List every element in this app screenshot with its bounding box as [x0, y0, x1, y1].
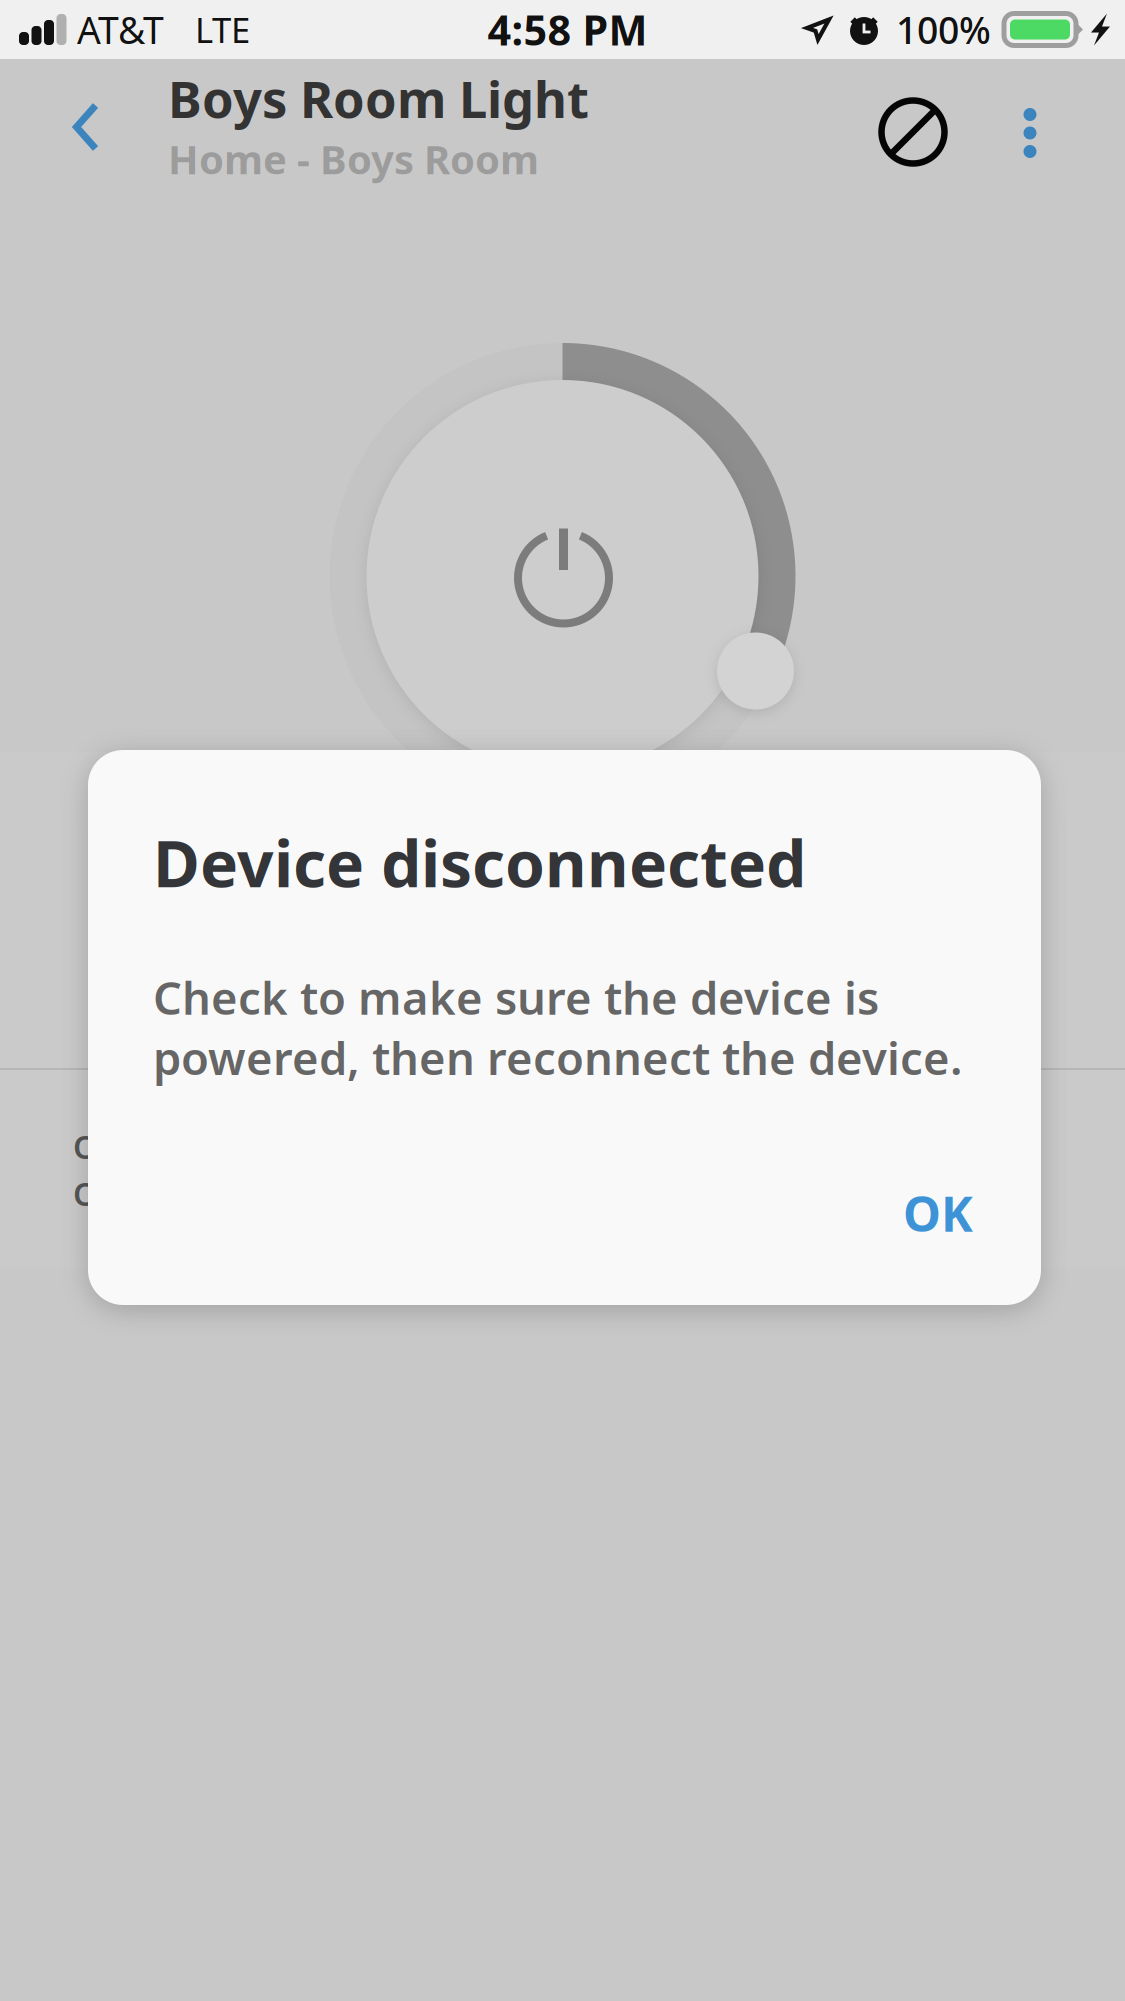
- staticText: Off: [73, 1172, 122, 1215]
- staticText: LTE: [195, 6, 250, 52]
- button[interactable]: Off: [0, 1170, 1125, 1217]
- staticText: Off: [73, 1125, 122, 1168]
- staticText: 100%: [896, 5, 991, 54]
- staticText: Device disconnected: [153, 820, 806, 905]
- staticText: Home - Boys Room: [168, 132, 539, 185]
- button[interactable]: More options: [979, 59, 1081, 195]
- button[interactable]: Off: [0, 1123, 1125, 1170]
- button[interactable]: Power: [0, 326, 1125, 826]
- staticText: Check to make sure the device is powered…: [153, 967, 963, 1087]
- button[interactable]: OK: [879, 1163, 997, 1263]
- staticText: 4:58 PM: [487, 2, 647, 57]
- button[interactable]: Back: [0, 59, 172, 195]
- staticText: Boys Room Light: [168, 65, 589, 132]
- staticText: AT&T: [77, 5, 164, 54]
- staticText: OK: [903, 1181, 973, 1245]
- button[interactable]: Device unavailable: [847, 59, 979, 195]
